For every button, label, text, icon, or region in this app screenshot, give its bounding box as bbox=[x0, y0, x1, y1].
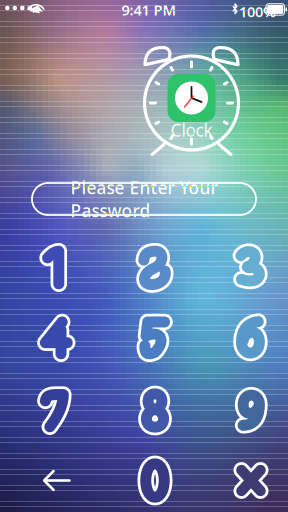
button[interactable] bbox=[24, 382, 88, 438]
staticText: Clock bbox=[170, 118, 212, 141]
staticText: 9:41 PM bbox=[122, 0, 177, 19]
button[interactable]: Please Enter Your Password bbox=[32, 183, 256, 215]
button[interactable] bbox=[123, 452, 187, 508]
staticText: 100% bbox=[239, 2, 276, 21]
button[interactable] bbox=[24, 239, 88, 295]
button[interactable] bbox=[219, 239, 283, 295]
button[interactable] bbox=[24, 452, 88, 508]
button[interactable] bbox=[219, 309, 283, 365]
button[interactable] bbox=[219, 382, 283, 438]
button[interactable] bbox=[123, 239, 187, 295]
button[interactable] bbox=[219, 452, 283, 508]
button[interactable] bbox=[123, 382, 187, 438]
staticText: Please Enter Your Password bbox=[70, 176, 217, 222]
button[interactable] bbox=[123, 309, 187, 365]
button[interactable] bbox=[24, 309, 88, 365]
